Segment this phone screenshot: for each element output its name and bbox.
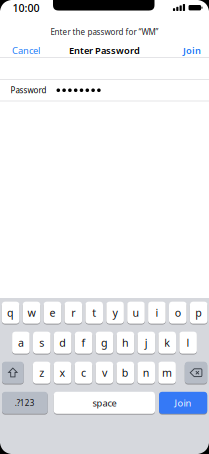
- staticText: x: [60, 366, 66, 380]
- button[interactable]: v: [96, 361, 113, 384]
- staticText: Join: [175, 397, 192, 409]
- staticText: q: [7, 306, 14, 320]
- button[interactable]: j: [137, 331, 155, 354]
- button[interactable]: w: [23, 301, 40, 324]
- button[interactable]: f: [75, 331, 92, 354]
- button[interactable]: Password: [0, 79, 209, 101]
- button[interactable]: q: [2, 301, 19, 324]
- staticText: b: [122, 366, 129, 380]
- button[interactable]: b: [116, 361, 134, 384]
- button[interactable]: a: [12, 331, 30, 354]
- staticText: e: [49, 306, 55, 320]
- staticText: j: [145, 336, 148, 350]
- button[interactable]: d: [54, 331, 71, 354]
- staticText: f: [82, 336, 86, 350]
- button[interactable]: x: [54, 361, 71, 384]
- button[interactable]: o: [169, 301, 187, 324]
- staticText: y: [113, 306, 118, 320]
- button[interactable]: Cancel: [4, 40, 48, 60]
- staticText: Enter Password: [69, 44, 140, 57]
- button[interactable]: Delete: [185, 361, 207, 384]
- staticText: o: [175, 306, 181, 320]
- button[interactable]: i: [148, 301, 166, 324]
- staticText: i: [155, 306, 158, 320]
- staticText: Cancel: [12, 44, 40, 57]
- button[interactable]: n: [137, 361, 155, 384]
- staticText: z: [39, 366, 44, 380]
- staticText: Join: [183, 44, 201, 57]
- staticText: n: [143, 366, 150, 380]
- staticText: .?123: [15, 397, 35, 408]
- staticText: v: [102, 366, 107, 380]
- staticText: Enter the password for “WM”: [50, 26, 158, 37]
- button[interactable]: c: [75, 361, 92, 384]
- button[interactable]: p: [190, 301, 207, 324]
- button[interactable]: t: [85, 301, 103, 324]
- button[interactable]: Join: [175, 40, 209, 60]
- button[interactable]: z: [33, 361, 50, 384]
- staticText: d: [59, 336, 66, 350]
- staticText: r: [71, 306, 75, 320]
- button[interactable]: y: [106, 301, 124, 324]
- staticText: g: [101, 336, 108, 350]
- button[interactable]: m: [158, 361, 176, 384]
- button[interactable]: g: [96, 331, 113, 354]
- staticText: Password: [10, 85, 46, 95]
- button[interactable]: .?123: [2, 391, 48, 414]
- staticText: m: [162, 366, 172, 380]
- staticText: w: [27, 306, 35, 320]
- button[interactable]: l: [179, 331, 197, 354]
- staticText: s: [39, 336, 44, 350]
- button[interactable]: Join: [159, 391, 207, 414]
- staticText: c: [81, 366, 86, 380]
- staticText: 10:00: [12, 1, 39, 15]
- staticText: t: [92, 306, 96, 320]
- staticText: p: [195, 306, 202, 320]
- button[interactable]: e: [44, 301, 61, 324]
- staticText: l: [187, 336, 190, 350]
- staticText: u: [132, 306, 139, 320]
- button[interactable]: u: [127, 301, 145, 324]
- button[interactable]: k: [158, 331, 176, 354]
- staticText: a: [18, 336, 24, 350]
- button[interactable]: s: [33, 331, 51, 354]
- button[interactable]: r: [64, 301, 82, 324]
- staticText: k: [164, 336, 170, 350]
- button[interactable]: Shift: [2, 361, 24, 384]
- button[interactable]: space: [54, 391, 155, 414]
- button[interactable]: h: [117, 331, 134, 354]
- staticText: space: [92, 397, 116, 409]
- staticText: h: [122, 336, 129, 350]
